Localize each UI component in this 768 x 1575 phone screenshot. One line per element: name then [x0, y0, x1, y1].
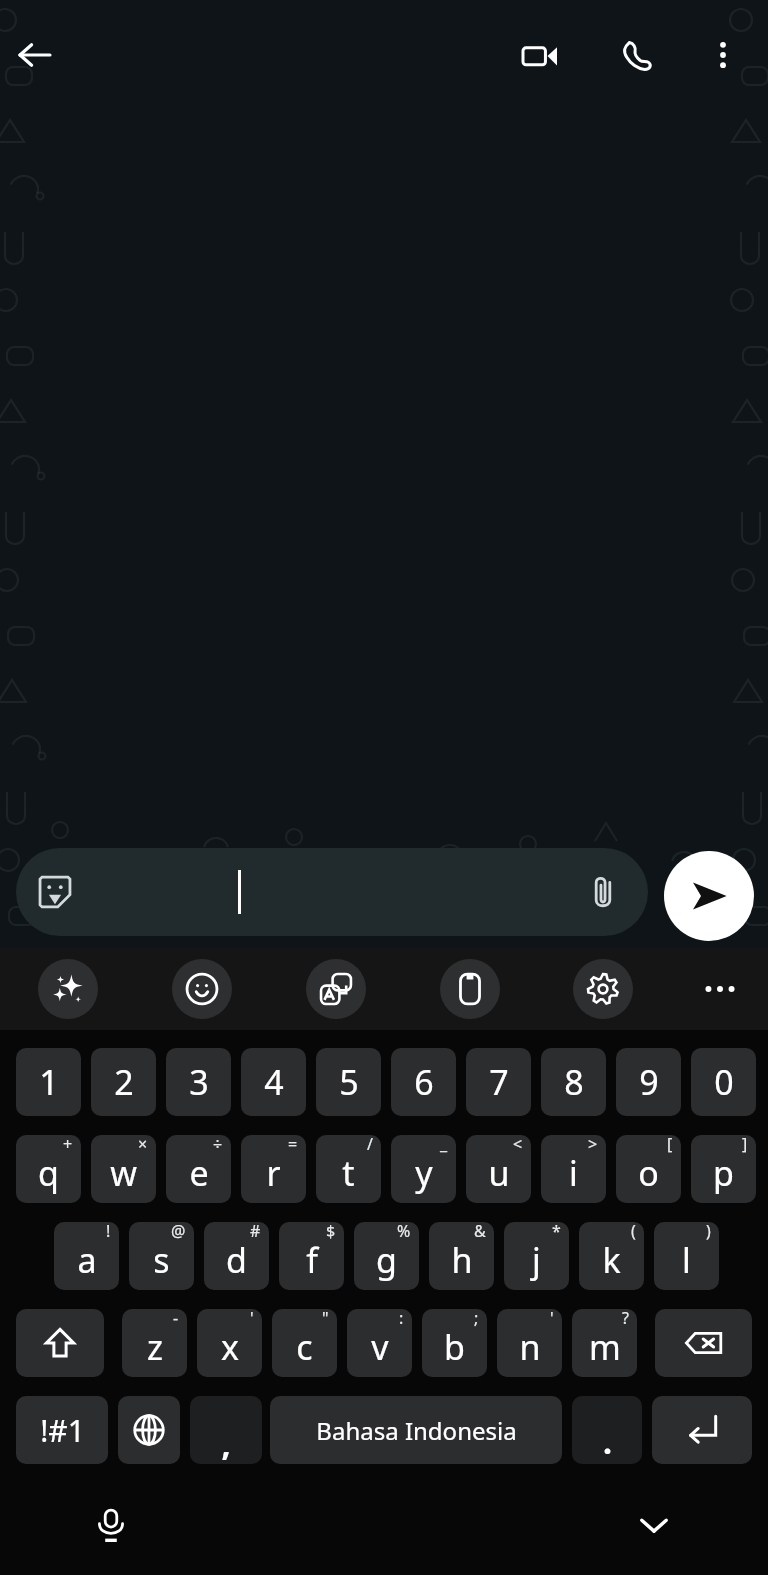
button[interactable]: z	[122, 1309, 187, 1377]
staticText: 1	[39, 1059, 59, 1105]
staticText: e	[189, 1150, 209, 1196]
staticText: i	[569, 1150, 578, 1196]
button[interactable]: b	[422, 1309, 487, 1377]
button[interactable]: 1	[16, 1048, 81, 1116]
staticText: #	[250, 1222, 261, 1242]
staticText: q	[38, 1150, 59, 1196]
staticText: k	[602, 1237, 621, 1283]
button[interactable]: 2	[91, 1048, 156, 1116]
button[interactable]: 8	[541, 1048, 606, 1116]
button[interactable]: Video call	[510, 26, 570, 86]
button[interactable]: f	[279, 1222, 344, 1290]
button[interactable]: o	[616, 1135, 681, 1203]
button[interactable]: r	[241, 1135, 306, 1203]
button[interactable]: u	[466, 1135, 531, 1203]
button[interactable]: k	[579, 1222, 644, 1290]
staticText: -	[173, 1309, 179, 1329]
staticText: 3	[189, 1059, 209, 1105]
staticText: 9	[639, 1059, 659, 1105]
staticText: y	[415, 1150, 433, 1196]
staticText: a	[77, 1237, 97, 1283]
button[interactable]: 3	[166, 1048, 231, 1116]
staticText: p	[713, 1150, 734, 1196]
staticText: )	[706, 1222, 711, 1242]
button[interactable]: ,	[190, 1396, 262, 1464]
staticText: _	[440, 1135, 448, 1155]
staticText: m	[589, 1324, 621, 1370]
button[interactable]: n	[497, 1309, 562, 1377]
button[interactable]: Attach	[576, 865, 630, 919]
button[interactable]: More	[690, 959, 750, 1019]
button[interactable]: 6	[391, 1048, 456, 1116]
button[interactable]: p	[691, 1135, 756, 1203]
button[interactable]: a	[54, 1222, 119, 1290]
button[interactable]: 7	[466, 1048, 531, 1116]
button[interactable]: .	[572, 1396, 642, 1464]
button[interactable]: Symbols	[16, 1396, 108, 1464]
staticText: '	[250, 1309, 254, 1329]
button[interactable]: Voice input	[78, 1492, 144, 1558]
button[interactable]: h	[429, 1222, 494, 1290]
button[interactable]: s	[129, 1222, 194, 1290]
button[interactable]: y	[391, 1135, 456, 1203]
button[interactable]: v	[347, 1309, 412, 1377]
staticText: =	[288, 1135, 298, 1155]
staticText: $	[326, 1222, 336, 1242]
staticText: Bahasa Indonesia	[316, 1414, 517, 1447]
staticText: f	[306, 1237, 318, 1283]
staticText: h	[451, 1237, 473, 1283]
button[interactable]: 0	[691, 1048, 756, 1116]
button[interactable]: Enter	[652, 1396, 752, 1464]
button[interactable]: Clipboard	[440, 959, 500, 1019]
button[interactable]: g	[354, 1222, 419, 1290]
button[interactable]: 4	[241, 1048, 306, 1116]
staticText: ?	[622, 1309, 629, 1329]
button[interactable]	[16, 1309, 104, 1377]
button[interactable]: w	[91, 1135, 156, 1203]
staticText: @	[171, 1222, 186, 1242]
staticText: t	[342, 1150, 355, 1196]
button[interactable]: Change language	[118, 1396, 180, 1464]
staticText: 8	[564, 1059, 584, 1105]
button[interactable]: Settings	[573, 959, 633, 1019]
staticText: %	[397, 1222, 411, 1242]
staticText: u	[488, 1150, 510, 1196]
staticText: d	[226, 1237, 247, 1283]
staticText: ÷	[213, 1135, 223, 1155]
staticText: 7	[489, 1059, 509, 1105]
staticText: 6	[414, 1059, 434, 1105]
button[interactable]: q	[16, 1135, 81, 1203]
staticText: '	[550, 1309, 554, 1329]
button[interactable]: c	[272, 1309, 337, 1377]
button[interactable]: Sticker	[28, 865, 82, 919]
button[interactable]: Translate	[306, 959, 366, 1019]
button[interactable]: d	[204, 1222, 269, 1290]
button[interactable]: l	[654, 1222, 719, 1290]
button[interactable]: Send	[664, 851, 754, 941]
button[interactable]: t	[316, 1135, 381, 1203]
staticText: +	[63, 1135, 73, 1155]
button[interactable]: Backspace	[655, 1309, 752, 1377]
button[interactable]: 9	[616, 1048, 681, 1116]
button[interactable]: 5	[316, 1048, 381, 1116]
button[interactable]: Back	[6, 26, 64, 84]
button[interactable]: Hide keyboard	[621, 1492, 687, 1558]
button[interactable]: Space	[270, 1396, 562, 1464]
button[interactable]: AI assist	[38, 959, 98, 1019]
staticText: [	[667, 1135, 673, 1155]
button[interactable]: Voice call	[607, 26, 667, 86]
staticText: 2	[114, 1059, 134, 1105]
button[interactable]: m	[572, 1309, 637, 1377]
button[interactable]: Emoji	[172, 959, 232, 1019]
button[interactable]: Sticker	[16, 848, 648, 936]
button[interactable]: i	[541, 1135, 606, 1203]
staticText: 5	[339, 1059, 359, 1105]
staticText: z	[147, 1324, 163, 1370]
button[interactable]: x	[197, 1309, 262, 1377]
button[interactable]: e	[166, 1135, 231, 1203]
staticText: ,	[221, 1422, 231, 1464]
staticText: ×	[138, 1135, 148, 1155]
staticText: !#1	[40, 1410, 85, 1451]
button[interactable]: j	[504, 1222, 569, 1290]
button[interactable]: More options	[694, 26, 752, 84]
